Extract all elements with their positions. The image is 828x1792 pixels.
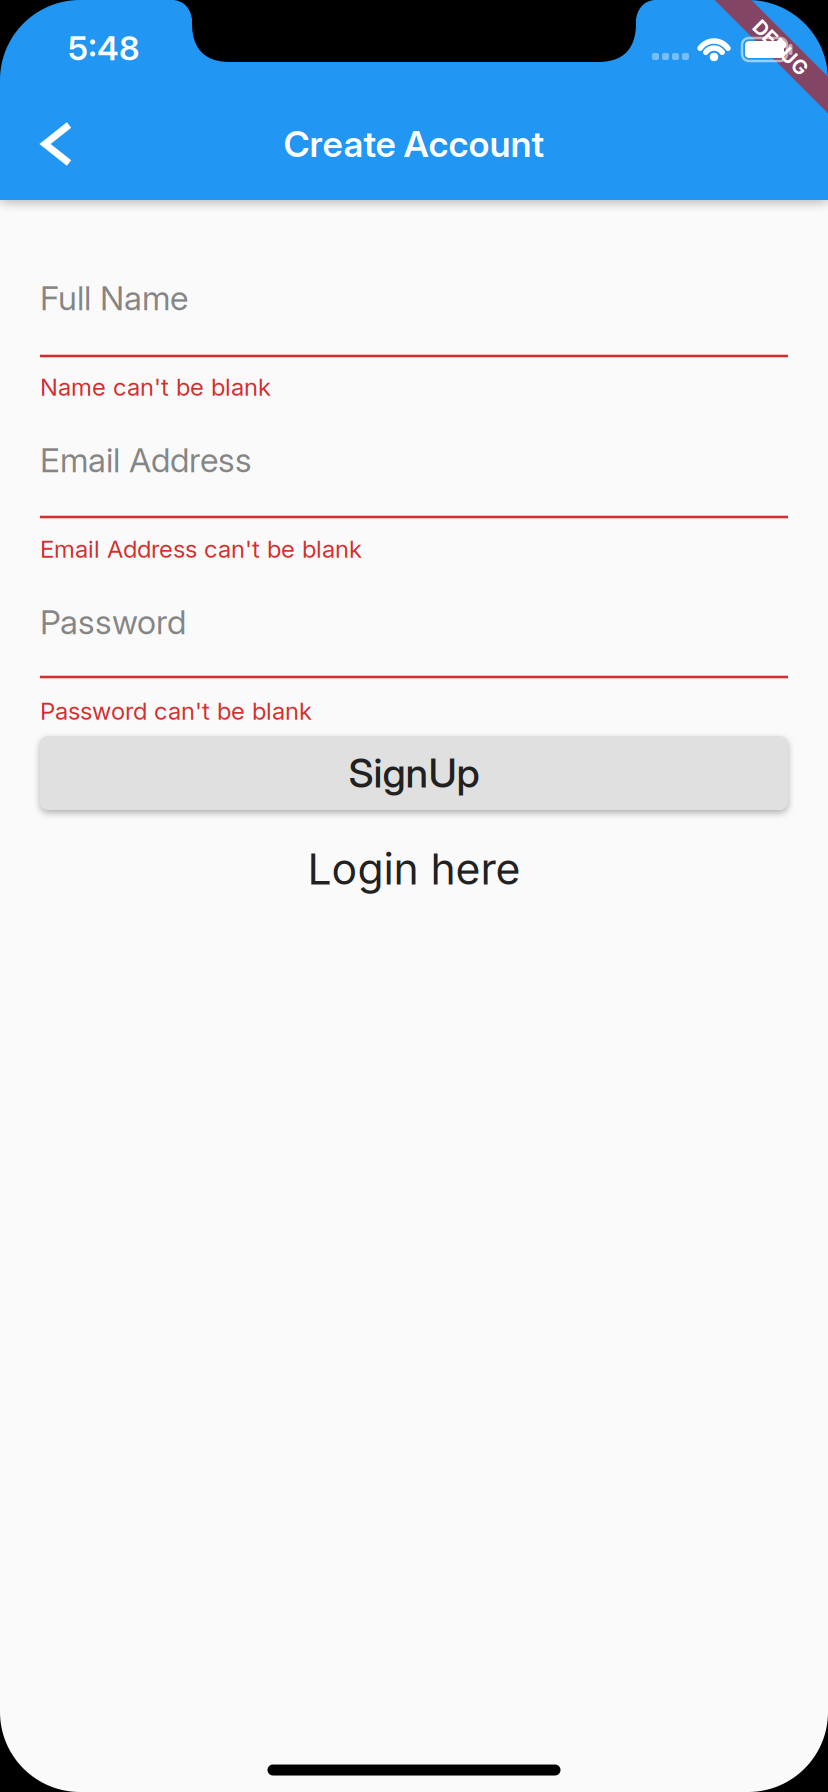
button[interactable]: Login here <box>307 843 520 895</box>
staticText: Full Name <box>40 278 188 318</box>
staticText: Password <box>40 602 186 642</box>
staticText: Login here <box>307 843 520 895</box>
staticText: Create Account <box>283 122 544 166</box>
staticText: Name can't be blank <box>40 372 271 401</box>
staticText: Email Address <box>40 440 252 480</box>
staticText: SignUp <box>348 749 479 797</box>
button[interactable]: SignUp <box>40 736 788 810</box>
staticText: Email Address can't be blank <box>40 534 362 563</box>
staticText: 5:48 <box>68 28 140 68</box>
button[interactable] <box>12 94 102 194</box>
staticText: DEBUG <box>746 35 815 60</box>
staticText: Password can't be blank <box>40 696 312 725</box>
